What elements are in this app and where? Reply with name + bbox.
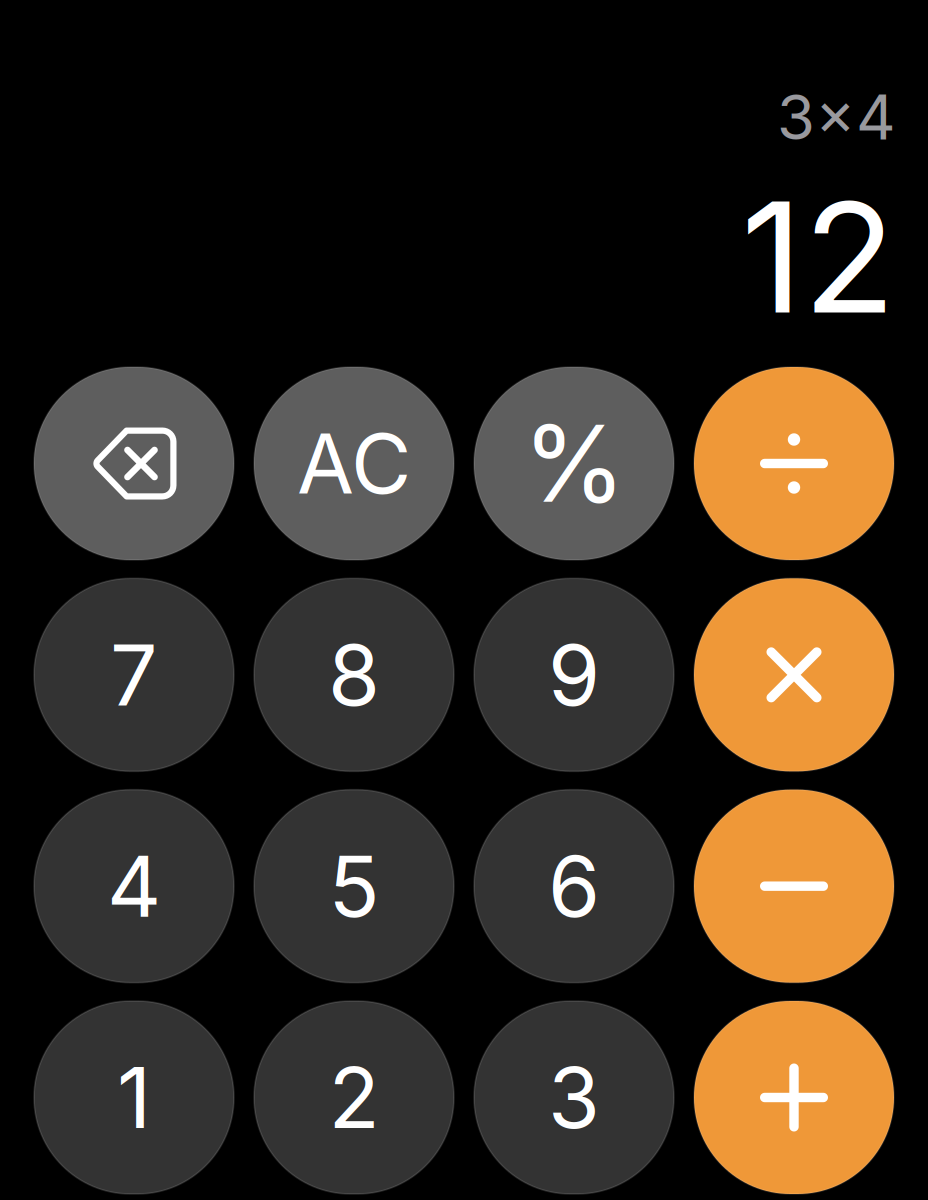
button[interactable]: Minus bbox=[694, 790, 894, 983]
button[interactable]: 9 bbox=[474, 578, 674, 771]
staticText: 3×4 bbox=[777, 80, 896, 154]
button[interactable]: AC bbox=[254, 367, 454, 560]
staticText: 8 bbox=[328, 624, 380, 726]
button[interactable]: 6 bbox=[474, 790, 674, 983]
button[interactable]: Plus bbox=[694, 1001, 894, 1194]
button[interactable]: 5 bbox=[254, 790, 454, 983]
button[interactable]: Delete bbox=[34, 367, 234, 560]
button[interactable]: Multiply bbox=[694, 578, 894, 771]
staticText: 2 bbox=[328, 1047, 379, 1148]
button[interactable]: % bbox=[474, 367, 674, 560]
button[interactable]: 8 bbox=[254, 578, 454, 771]
staticText: 4 bbox=[107, 835, 161, 937]
button[interactable]: 1 bbox=[34, 1001, 234, 1194]
button[interactable]: 2 bbox=[254, 1001, 454, 1194]
staticText: 1 bbox=[117, 1047, 151, 1148]
staticText: 9 bbox=[548, 624, 600, 726]
button[interactable]: Divide bbox=[694, 367, 894, 560]
staticText: 6 bbox=[548, 835, 600, 937]
staticText: 7 bbox=[110, 624, 158, 726]
staticText: 5 bbox=[328, 835, 379, 937]
staticText: AC bbox=[297, 413, 411, 513]
button[interactable]: 3 bbox=[474, 1001, 674, 1194]
staticText: % bbox=[522, 400, 625, 527]
staticText: 3 bbox=[548, 1047, 600, 1148]
button[interactable]: 4 bbox=[34, 790, 234, 983]
staticText: 12 bbox=[741, 165, 896, 349]
button[interactable]: 7 bbox=[34, 578, 234, 771]
